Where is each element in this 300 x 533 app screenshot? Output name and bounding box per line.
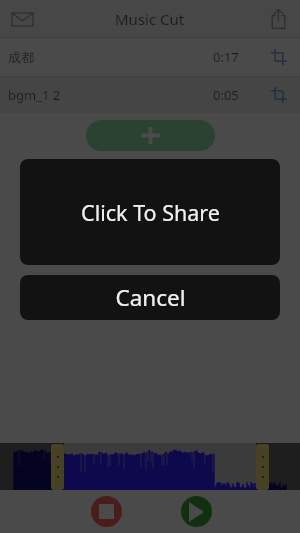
button[interactable]: 成都 [0,38,300,76]
button[interactable]: bgm_1 2 [0,77,300,113]
button[interactable]: Click To Share [20,159,280,265]
staticText: 0:17 [213,48,239,66]
button[interactable]: Mail [6,3,38,35]
staticText: Music Cut [115,9,185,29]
button[interactable]: Share [262,3,294,35]
button[interactable]: Stop [91,496,122,527]
button[interactable]: Play [181,496,212,527]
button[interactable]: Cancel [20,275,280,320]
staticText: Cancel [115,282,186,313]
button[interactable]: Trim handle [256,444,269,490]
staticText: 成都 [8,49,34,65]
button[interactable]: Trim handle [51,444,64,490]
button[interactable]: Crop [266,44,292,70]
staticText: 0:05 [213,86,239,104]
button[interactable]: Crop [266,82,292,108]
staticText: bgm_1 2 [8,86,61,104]
staticText: Click To Share [81,198,220,227]
button[interactable]: Add [86,120,215,151]
